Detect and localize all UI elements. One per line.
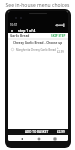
staticText: Cheesy Garlic Bread - Choose up to 1 bbox=[13, 41, 63, 45]
button[interactable]: Home bbox=[36, 136, 41, 141]
staticText: + £2.99 bbox=[57, 46, 65, 53]
button[interactable]: Recent apps bbox=[52, 136, 57, 141]
button[interactable]: Close bbox=[9, 28, 14, 33]
staticText: Margherita Cheesy Garlic Bread bbox=[16, 48, 57, 52]
staticText: ◂▮▸▪▪▌ bbox=[55, 23, 66, 26]
staticText: £2.99 bbox=[57, 130, 65, 134]
button[interactable]: ADD TO BASKET bbox=[8, 129, 68, 135]
staticText: Garlic Bread bbox=[10, 34, 30, 38]
staticText: 10:57 bbox=[10, 23, 18, 27]
staticText: ADD TO BASKET bbox=[25, 130, 49, 134]
staticText: SKIP STEP bbox=[51, 34, 66, 38]
button[interactable]: SKIP STEP bbox=[51, 34, 66, 38]
button[interactable]: Margherita Cheesy Garlic Bread bbox=[8, 46, 68, 53]
staticText: step 1 of 4 bbox=[18, 28, 36, 33]
staticText: See in-house menu choices bbox=[0, 2, 75, 9]
button[interactable]: Back bbox=[19, 136, 24, 141]
